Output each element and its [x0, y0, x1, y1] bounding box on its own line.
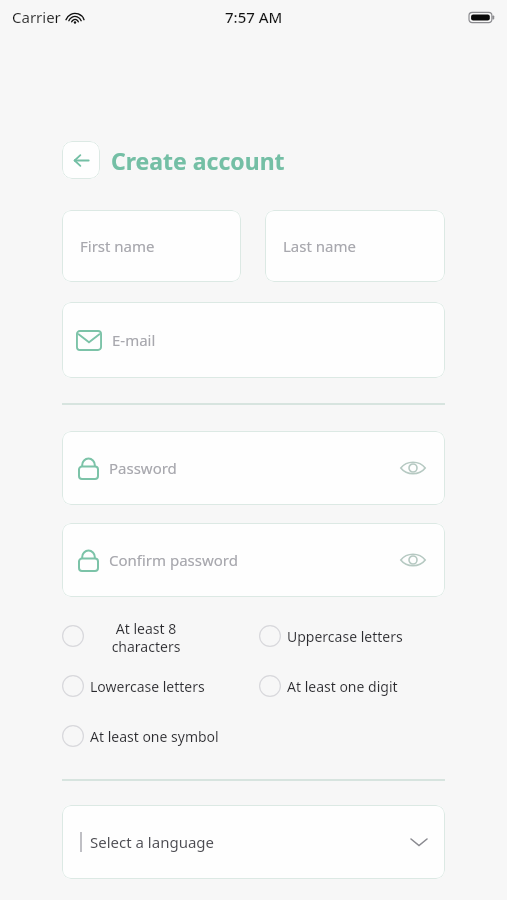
button[interactable]: Password [62, 431, 445, 505]
button[interactable]: Uppercase letters [259, 619, 457, 653]
staticText: Last name [283, 236, 356, 256]
staticText: Password [109, 458, 177, 478]
staticText: Carrier [12, 7, 61, 27]
staticText: At least one symbol [90, 727, 219, 746]
button[interactable]: Show password [397, 452, 429, 484]
button[interactable]: Lowercase letters [62, 669, 259, 703]
staticText: First name [80, 236, 155, 256]
staticText: At least 8 characters [98, 619, 194, 653]
staticText: Create account [111, 145, 285, 176]
button[interactable]: At least 8 characters [62, 619, 259, 653]
staticText: 7:57 AM [225, 7, 283, 27]
button[interactable]: At least one symbol [62, 719, 259, 753]
staticText: E-mail [112, 330, 156, 350]
staticText: Select a language [90, 832, 215, 852]
button[interactable]: First name [62, 210, 241, 282]
staticText: Uppercase letters [287, 627, 403, 646]
button[interactable]: Back [62, 141, 100, 179]
button[interactable]: Show password [397, 544, 429, 576]
staticText: Confirm password [109, 550, 238, 570]
button[interactable]: Last name [265, 210, 445, 282]
button[interactable]: Confirm password [62, 523, 445, 597]
button[interactable]: Select a language [62, 805, 445, 879]
staticText: Lowercase letters [90, 677, 205, 696]
button[interactable]: E-mail [62, 302, 445, 378]
button[interactable]: At least one digit [259, 669, 457, 703]
staticText: At least one digit [287, 677, 398, 696]
